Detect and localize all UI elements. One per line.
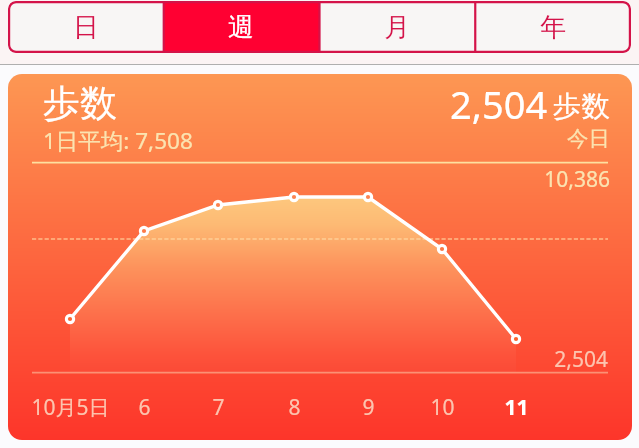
button[interactable]: 月 [319, 1, 475, 53]
button[interactable]: 週 [163, 1, 319, 53]
staticText: 歩数 [43, 80, 117, 127]
staticText: 日 [73, 11, 99, 44]
button[interactable]: 年 [475, 1, 631, 53]
staticText: 歩数 [553, 89, 610, 125]
staticText: 11 [504, 393, 529, 422]
staticText: 7 [212, 393, 225, 422]
staticText: 今日 [567, 125, 610, 152]
staticText: 年 [540, 11, 566, 44]
staticText: 8 [288, 393, 301, 422]
button[interactable]: 日 [8, 1, 163, 53]
staticText: 2,504 [554, 345, 608, 374]
staticText: 10,386 [544, 165, 610, 194]
staticText: 2,504 [450, 78, 548, 130]
staticText: 月 [384, 11, 410, 44]
staticText: 6 [138, 393, 151, 422]
button[interactable]: 歩数 [8, 74, 632, 440]
staticText: 1日平均: 7,508 [43, 125, 193, 156]
staticText: 10 [430, 393, 455, 422]
staticText: 9 [362, 393, 375, 422]
staticText: 週 [228, 11, 254, 44]
staticText: 10月5日 [31, 393, 110, 422]
